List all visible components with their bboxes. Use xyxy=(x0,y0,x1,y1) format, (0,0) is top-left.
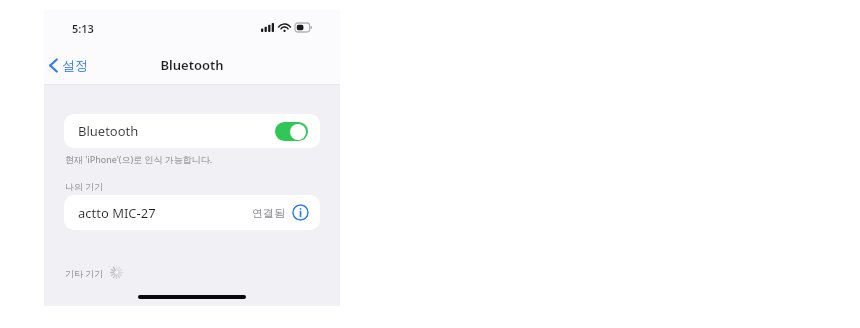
staticText: actto MIC-27 xyxy=(78,204,156,222)
staticText: Bluetooth xyxy=(78,122,139,140)
staticText: 연결됨 xyxy=(252,206,285,220)
button[interactable]: Device info xyxy=(292,204,309,221)
button[interactable]: Bluetooth on xyxy=(275,122,308,141)
button[interactable]: 설정 xyxy=(44,52,96,78)
button[interactable]: Bluetooth xyxy=(64,114,320,148)
button[interactable]: actto MIC-27 xyxy=(64,195,320,230)
staticText: 5:13 xyxy=(72,21,94,36)
staticText: Bluetooth xyxy=(160,56,224,74)
staticText: 설정 xyxy=(62,57,88,73)
staticText: 나의 기기 xyxy=(65,180,104,192)
staticText: 기타 기기 xyxy=(65,267,104,279)
staticText: 현재 'iPhone'(으)로 인식 가능합니다. xyxy=(65,153,213,165)
